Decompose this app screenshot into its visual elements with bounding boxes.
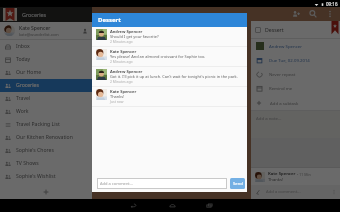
button[interactable]: Sophie's Wishlist: [0, 170, 92, 183]
staticText: Thanks!: [110, 94, 125, 99]
staticText: Kate Spencer: [110, 49, 137, 54]
staticText: Inbox: [16, 43, 30, 50]
button[interactable]: Send: [230, 178, 245, 189]
button[interactable]: Kate Spencer: [0, 22, 92, 39]
staticText: Kate Spencer: [19, 25, 51, 32]
staticText: Never repeat: [269, 71, 296, 77]
staticText: Send: [233, 181, 243, 187]
staticText: Yes please! And an almond croissant for …: [110, 54, 206, 59]
staticText: Got it. I'll pick it up at lunch. Can't …: [110, 74, 238, 79]
staticText: Remind me: [269, 85, 293, 91]
staticText: Andrew Spencer: [269, 43, 302, 49]
staticText: Add a subtask: [270, 100, 299, 106]
button[interactable]: Due Tue, 02.09.2014: [251, 53, 340, 67]
staticText: Due Tue, 02.09.2014: [269, 57, 310, 63]
staticText: Add a note...: [256, 115, 282, 121]
staticText: Groceries: [16, 82, 39, 89]
button[interactable]: Kate Spencer: [251, 168, 340, 185]
staticText: Travel: [16, 95, 31, 102]
staticText: Dessert: [265, 26, 284, 33]
button[interactable]: Travel Packing List: [0, 118, 92, 131]
staticText: Dessert: [98, 16, 121, 24]
staticText: Andrew Spencer: [110, 29, 143, 34]
button[interactable]: TV Shows: [0, 157, 92, 170]
staticText: TV Shows: [16, 160, 39, 167]
button[interactable]: Recent apps: [202, 199, 216, 212]
staticText: 2 Minutes ago: [110, 59, 133, 64]
button[interactable]: Travel: [0, 92, 92, 105]
button[interactable]: Work: [0, 105, 92, 118]
staticText: 2 Minutes ago: [110, 39, 133, 44]
other: Account: [82, 28, 88, 34]
button[interactable]: Dessert: [251, 21, 340, 38]
button[interactable]: Our Kitchen Renovation: [0, 131, 92, 144]
staticText: Sophie's Wishlist: [16, 173, 56, 180]
button[interactable]: Search: [306, 7, 319, 20]
staticText: Our Kitchen Renovation: [16, 134, 73, 141]
button[interactable]: Home: [165, 199, 179, 212]
button[interactable]: Groceries: [0, 79, 92, 92]
button[interactable]: Kate Spencer: [92, 47, 247, 66]
staticText: Add a comment...: [266, 189, 301, 195]
staticText: Kate Spencer: [110, 89, 137, 94]
button[interactable]: Andrew Spencer: [92, 67, 247, 86]
button[interactable]: Sophie's Chores: [0, 144, 92, 157]
button[interactable]: Andrew Spencer: [92, 27, 247, 46]
staticText: Thanks!: [268, 177, 284, 183]
button[interactable]: Today: [0, 53, 92, 66]
button[interactable]: Add person: [289, 7, 302, 20]
staticText: Kate Spencer: [268, 171, 296, 177]
button[interactable]: Andrew Spencer: [251, 39, 340, 53]
button[interactable]: Dessert: [92, 13, 247, 27]
staticText: Today: [16, 56, 31, 63]
staticText: Travel Packing List: [16, 121, 60, 128]
staticText: Our Home: [16, 69, 42, 76]
button[interactable]: Kate Spencer: [92, 87, 247, 106]
staticText: Just now: [110, 99, 124, 104]
staticText: Work: [16, 108, 29, 115]
staticText: 2 Minutes ago: [110, 79, 133, 84]
button[interactable]: Add a comment...: [251, 185, 340, 199]
button[interactable]: Remind me: [251, 81, 340, 95]
staticText: • 11 Min: [296, 172, 311, 177]
button[interactable]: Our Home: [0, 66, 92, 79]
staticText: Groceries: [22, 11, 47, 18]
button[interactable]: Inbox: [0, 40, 92, 53]
staticText: Add a comment...: [100, 181, 134, 186]
button[interactable]: Back: [126, 199, 140, 212]
staticText: Sophie's Chores: [16, 147, 54, 154]
button[interactable]: Never repeat: [251, 67, 340, 81]
button[interactable]: Add a comment...: [97, 178, 227, 189]
staticText: kate@wunderlist.com: [19, 32, 59, 37]
button[interactable]: Add a subtask: [251, 95, 340, 110]
staticText: 09:16: [326, 1, 338, 7]
button[interactable]: More options: [323, 7, 336, 20]
staticText: Andrew Spencer: [110, 69, 143, 74]
staticText: Should I get your favorite?: [110, 34, 159, 39]
